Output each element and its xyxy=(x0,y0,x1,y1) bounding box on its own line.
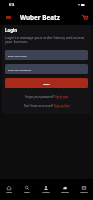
button[interactable]: Reset now xyxy=(55,95,69,99)
button[interactable]: Login xyxy=(5,78,88,88)
button[interactable]: Services xyxy=(55,179,74,200)
staticText: 8:14 xyxy=(9,3,15,7)
staticText: Home xyxy=(6,191,12,194)
staticText: Login to manage your order history and a… xyxy=(5,35,88,45)
staticText: Login xyxy=(43,82,50,85)
button[interactable]: Shopping cart xyxy=(79,12,90,23)
staticText: Don't have an account? xyxy=(24,104,54,108)
button[interactable]: Sign up here xyxy=(54,104,70,108)
staticText: Services xyxy=(61,191,69,194)
staticText: Forgot your password? xyxy=(25,95,55,99)
staticText: Account xyxy=(42,191,50,194)
staticText: Beats xyxy=(24,191,30,194)
staticText: Enter your password xyxy=(8,68,32,71)
button[interactable]: Beats xyxy=(18,179,36,200)
button[interactable]: Contact xyxy=(74,179,93,200)
button[interactable]: Account xyxy=(36,179,55,200)
staticText: Contact xyxy=(80,191,88,194)
button[interactable]: Enter your password xyxy=(5,64,88,74)
staticText: Login xyxy=(5,27,18,33)
staticText: Enter your email xyxy=(8,54,27,57)
staticText: Wuber Beatz xyxy=(20,13,60,22)
button[interactable]: Enter your email xyxy=(5,50,88,60)
button[interactable]: Open navigation menu xyxy=(3,11,14,24)
button[interactable]: Home xyxy=(0,179,18,200)
